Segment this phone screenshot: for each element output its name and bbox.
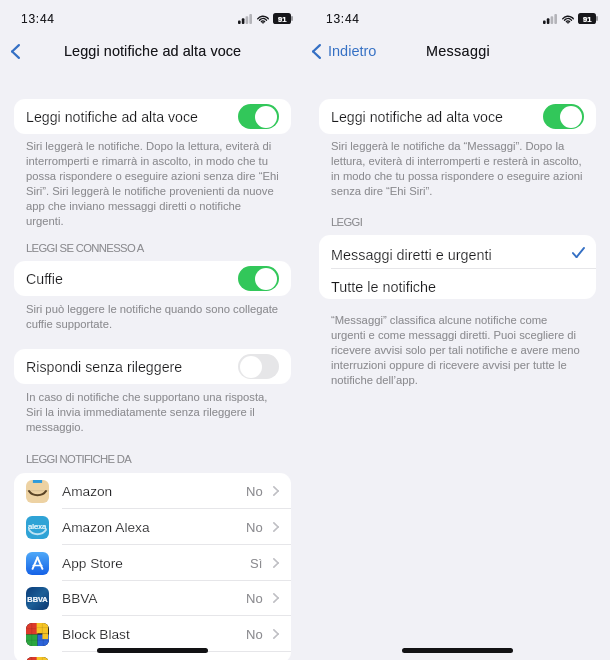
button[interactable]: Block Blast (14, 616, 291, 652)
staticText: 13:44 (21, 12, 55, 25)
staticText: Block Blast (62, 627, 130, 642)
staticText: Messaggi (426, 43, 490, 59)
button[interactable]: Leggi notifiche ad alta voce (14, 99, 291, 134)
staticText: Leggi notifiche ad alta voce (64, 43, 242, 59)
staticText: Leggi notifiche ad alta voce (26, 109, 198, 125)
staticText: Messaggi diretti e urgenti (331, 247, 492, 263)
staticText: Leggi notifiche ad alta voce (331, 109, 503, 125)
staticText: 91 (278, 15, 287, 23)
button[interactable]: Off (238, 354, 279, 379)
staticText: 13:44 (326, 12, 360, 25)
staticText: In caso di notifiche che supportano una … (26, 391, 305, 433)
button[interactable]: BBVA (14, 580, 291, 616)
staticText: Siri leggerà le notifiche. Dopo la lettu… (26, 140, 305, 227)
button[interactable]: Messaggi diretti e urgenti (319, 235, 596, 269)
staticText: Rispondi senza rileggere (26, 359, 183, 375)
button[interactable]: Back (312, 43, 377, 59)
staticText: LEGGI (331, 216, 363, 229)
staticText: No (246, 520, 263, 535)
staticText: No (246, 484, 263, 499)
button[interactable]: Cuffie (14, 261, 291, 296)
staticText: No (246, 591, 263, 606)
staticText: Cuffie (26, 271, 63, 287)
staticText: No (246, 627, 263, 642)
button[interactable]: On (543, 104, 584, 129)
staticText: Leggi notifiche ad alta voce (64, 43, 242, 59)
button[interactable]: Back (3, 39, 27, 63)
staticText: Amazon Alexa (62, 520, 150, 535)
staticText: BBVA (62, 591, 98, 606)
staticText: BBVA (26, 595, 49, 603)
button[interactable]: Leggi notifiche ad alta voce (319, 99, 596, 134)
staticText: LEGGI NOTIFICHE DA (26, 453, 132, 466)
button[interactable]: App Store (14, 545, 291, 581)
staticText: 91 (583, 15, 592, 23)
staticText: 13:44 (21, 12, 55, 25)
button[interactable]: On (238, 266, 279, 291)
button[interactable]: Amazon (14, 473, 291, 509)
button[interactable]: Rispondi senza rileggere (14, 349, 291, 384)
staticText: Siri leggerà le notifiche da “Messaggi”.… (331, 140, 610, 197)
staticText: Amazon (62, 484, 113, 499)
staticText: Tutte le notifiche (331, 279, 437, 295)
staticText: alexa (28, 522, 47, 530)
staticText: 13:44 (326, 12, 360, 25)
staticText: Indietro (328, 43, 377, 59)
staticText: Siri può leggere le notifiche quando son… (26, 303, 305, 330)
staticText: Messaggi (426, 43, 490, 59)
staticText: LEGGI SE CONNESSO A (26, 242, 144, 255)
staticText: Sì (250, 556, 263, 571)
staticText: App Store (62, 556, 123, 571)
button[interactable]: On (238, 104, 279, 129)
button[interactable]: alexa (14, 509, 291, 545)
staticText: “Messaggi” classifica alcune notifiche c… (331, 314, 610, 386)
button[interactable]: Tutte le notifiche (319, 269, 596, 299)
